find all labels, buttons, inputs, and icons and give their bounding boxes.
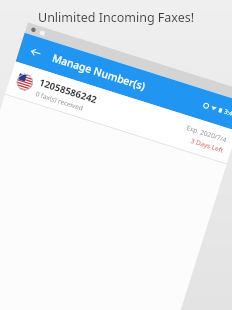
button[interactable]: Back (25, 42, 45, 62)
staticText: 3 Days Left (190, 136, 225, 155)
staticText: 3:41 (223, 108, 232, 119)
staticText: 12058586242 (38, 76, 99, 106)
staticText: Unlimited Incoming Faxes! (38, 9, 195, 26)
staticText: 0 fax(s) received (35, 89, 85, 113)
staticText: Exp. 2020/7/4 (185, 123, 228, 144)
button[interactable]: 12058586242 (5, 61, 232, 164)
button[interactable]: Back (16, 33, 232, 131)
staticText: Manage Number(s) (50, 51, 147, 93)
